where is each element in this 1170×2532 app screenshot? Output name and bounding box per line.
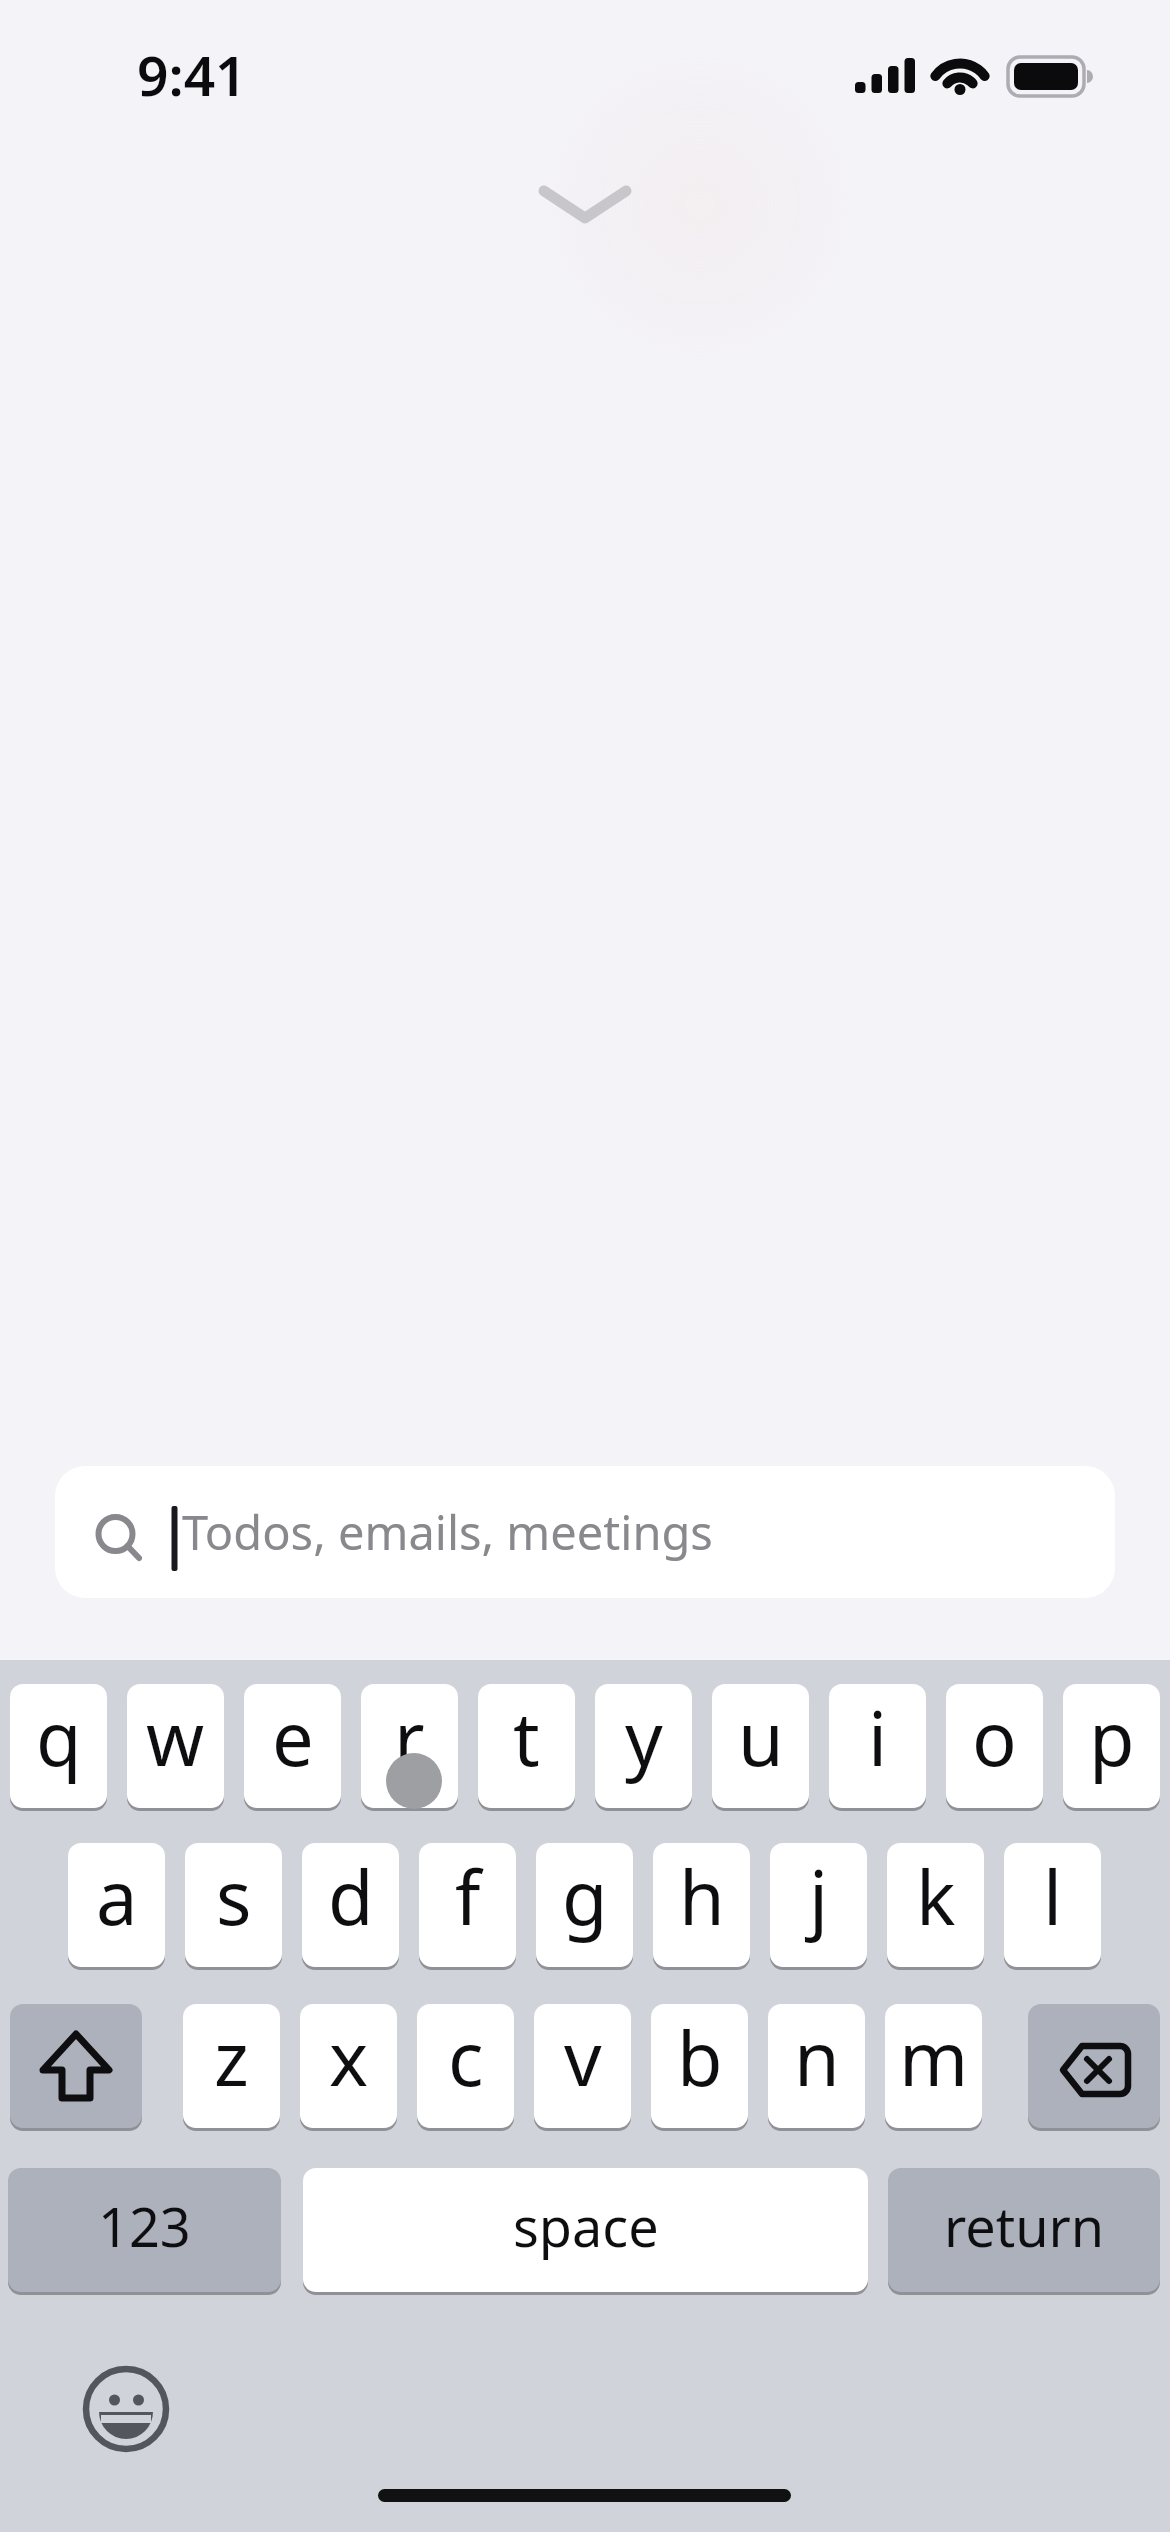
button[interactable]: e (244, 1684, 341, 1808)
staticText: y (625, 1687, 663, 1788)
button[interactable]: return (888, 2168, 1160, 2292)
staticText: r (394, 1687, 425, 1788)
staticText: a (96, 1846, 138, 1947)
staticText: l (1043, 1846, 1063, 1947)
button[interactable] (76, 2359, 176, 2459)
staticText: 123 (98, 2189, 191, 2263)
staticText: q (36, 1687, 82, 1788)
button[interactable]: d (302, 1843, 399, 1967)
button[interactable]: s (185, 1843, 282, 1967)
staticText: c (448, 2007, 484, 2108)
button[interactable]: o (946, 1684, 1043, 1808)
staticText: f (455, 1846, 481, 1947)
staticText: e (272, 1687, 314, 1788)
staticText: d (328, 1846, 374, 1947)
button[interactable]: k (887, 1843, 984, 1967)
staticText: space (513, 2189, 659, 2263)
button[interactable]: 123 (8, 2168, 281, 2292)
button[interactable]: b (651, 2004, 748, 2128)
staticText: s (216, 1846, 252, 1947)
button[interactable]: q (10, 1684, 107, 1808)
button[interactable]: f (419, 1843, 516, 1967)
staticText: v (564, 2007, 602, 2108)
staticText: z (214, 2007, 249, 2108)
staticText: w (146, 1687, 205, 1788)
button[interactable]: Todos, emails, meetings (55, 1466, 1115, 1598)
staticText: g (562, 1846, 608, 1947)
staticText: i (868, 1687, 888, 1788)
staticText: j (809, 1846, 829, 1947)
staticText: t (513, 1687, 540, 1788)
staticText: 9:41 (137, 37, 247, 112)
staticText: Todos, emails, meetings (182, 1500, 713, 1564)
button[interactable]: c (417, 2004, 514, 2128)
button[interactable]: i (829, 1684, 926, 1808)
button[interactable]: m (885, 2004, 982, 2128)
button[interactable]: h (653, 1843, 750, 1967)
button[interactable] (1028, 2004, 1160, 2128)
button[interactable]: z (183, 2004, 280, 2128)
button[interactable]: n (768, 2004, 865, 2128)
button[interactable]: y (595, 1684, 692, 1808)
button[interactable]: space (303, 2168, 868, 2292)
staticText: h (679, 1846, 725, 1947)
staticText: p (1089, 1687, 1135, 1788)
button[interactable]: w (127, 1684, 224, 1808)
staticText: u (738, 1687, 784, 1788)
staticText: return (944, 2189, 1105, 2263)
button[interactable]: j (770, 1843, 867, 1967)
button[interactable]: a (68, 1843, 165, 1967)
staticText: x (329, 2007, 369, 2108)
staticText: n (794, 2007, 840, 2108)
button[interactable] (10, 2004, 142, 2128)
button[interactable]: r (361, 1684, 458, 1808)
staticText: k (916, 1846, 956, 1947)
button[interactable]: p (1063, 1684, 1160, 1808)
button[interactable]: x (300, 2004, 397, 2128)
staticText: b (677, 2007, 723, 2108)
staticText: o (972, 1687, 1017, 1788)
button[interactable]: u (712, 1684, 809, 1808)
button[interactable]: l (1004, 1843, 1101, 1967)
button[interactable]: t (478, 1684, 575, 1808)
staticText: m (899, 2007, 969, 2108)
button[interactable]: v (534, 2004, 631, 2128)
button[interactable]: g (536, 1843, 633, 1967)
